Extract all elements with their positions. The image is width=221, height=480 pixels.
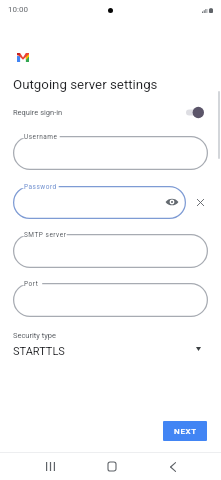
staticText: 10:00 [8,5,28,14]
staticText: STARTTLS [13,345,65,358]
staticText: SMTP server [24,231,67,239]
staticText: Security type [13,331,56,340]
button[interactable]: Recent apps [38,454,62,478]
button[interactable]: Home [100,454,124,478]
staticText: NEXT [174,427,197,436]
button[interactable]: Show password [165,195,179,209]
staticText: Require sign-in [13,108,63,117]
button[interactable]: Require sign-in [0,102,221,122]
button[interactable]: Clear [194,196,207,209]
button[interactable]: SMTP server [13,234,208,268]
staticText: Password [24,183,57,191]
staticText: Port [24,280,39,288]
button[interactable]: Back [161,455,185,479]
button[interactable]: Username [13,136,208,170]
button[interactable]: Port [13,283,208,317]
button[interactable]: Require sign-in [186,107,204,118]
staticText: Username [24,133,58,141]
button[interactable]: NEXT [163,421,207,441]
button[interactable]: Security type [0,328,221,364]
staticText: Outgoing server settings [13,77,158,93]
button[interactable]: Password [13,186,186,219]
